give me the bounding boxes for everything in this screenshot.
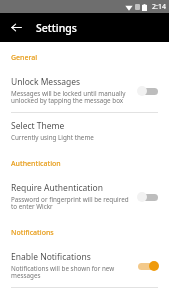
staticText: Notifications will be shown for new mess… <box>11 264 115 280</box>
button[interactable]: Toggle off <box>135 190 161 204</box>
staticText: Authentication <box>11 159 61 169</box>
staticText: Messages will be locked until manually u… <box>11 89 126 105</box>
staticText: Currently using Light theme <box>11 133 94 142</box>
button[interactable]: Toggle on <box>135 259 161 273</box>
staticText: Enable Notifications <box>11 251 91 263</box>
button[interactable]: Require Authentication <box>0 175 169 218</box>
staticText: 2:14 <box>152 2 166 12</box>
staticText: Settings <box>36 21 77 35</box>
staticText: General <box>11 53 38 63</box>
staticText: Select Theme <box>11 120 65 132</box>
staticText: Unlock Messages <box>11 76 81 88</box>
staticText: Password or fingerprint will be required… <box>11 195 129 211</box>
button[interactable]: Back <box>6 17 27 38</box>
staticText: Notifications <box>11 228 54 238</box>
button[interactable]: Select Theme <box>0 113 169 149</box>
button[interactable]: Unlock Messages <box>0 69 169 112</box>
button[interactable]: Enable Notifications <box>0 244 169 287</box>
staticText: Require Authentication <box>11 182 103 194</box>
button[interactable]: Toggle off <box>135 84 161 98</box>
